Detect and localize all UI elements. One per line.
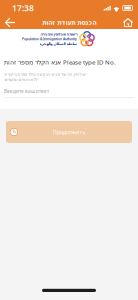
staticText: ‫יש להזין ת.ז של מגיש הבקשה כולל ספרת בי… [4,71,86,77]
staticText: ‪אנא הקלד מספר זהות Please type ID No. [4,58,116,66]
button[interactable]: Home [119,16,137,29]
staticText: سلطة السكان والهجرة [39,42,77,46]
button[interactable]: Продолжить [6,121,132,143]
staticText: הכנסת תעודת זהות [42,19,96,26]
staticText: Продолжить [52,128,85,136]
button[interactable]: Back [1,16,19,29]
staticText: רשות האוכלוסין וההגירה [40,32,77,36]
staticText: ‫ללא רווחים ומקפים [4,77,37,82]
staticText: Population & Immigration Authority [22,37,77,41]
staticText: Введите ваш ответ [4,88,49,94]
staticText: 17:38 [12,2,34,14]
